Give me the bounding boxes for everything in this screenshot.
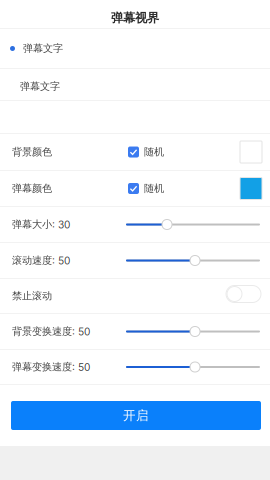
staticText: 弹幕变换速度: 50 (12, 361, 90, 373)
staticText: 开启 (123, 408, 149, 423)
button[interactable]: 弹幕颜色 (0, 171, 270, 206)
staticText: 弹幕文字 (23, 42, 63, 55)
staticText: 弹幕颜色 (12, 182, 52, 195)
staticText: 随机 (144, 146, 164, 158)
staticText: 弹幕视界 (111, 10, 159, 26)
button[interactable]: 弹幕文字 (0, 29, 270, 68)
button[interactable]: 开启 (11, 401, 261, 430)
button[interactable]: 禁止滚动 (0, 279, 270, 313)
staticText: 背景颜色 (12, 146, 52, 158)
button[interactable]: 背景颜色 (0, 134, 270, 170)
staticText: 禁止滚动 (12, 290, 52, 302)
staticText: 弹幕文字 (20, 80, 60, 93)
staticText: 弹幕大小: 30 (12, 218, 70, 231)
staticText: 滚动速度: 50 (12, 254, 70, 267)
staticText: 背景变换速度: 50 (12, 325, 90, 338)
staticText: 随机 (144, 182, 164, 195)
